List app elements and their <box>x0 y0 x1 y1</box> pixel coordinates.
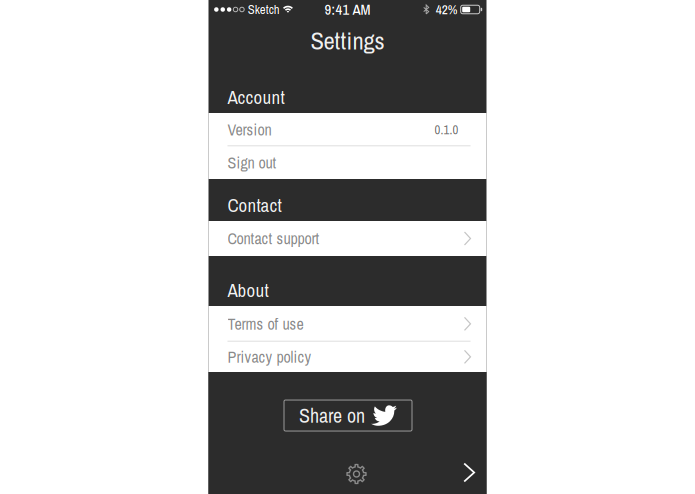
staticText: Account <box>227 84 284 110</box>
staticText: 9:41 AM <box>324 0 370 19</box>
staticText: 0.1.0 <box>434 121 458 138</box>
staticText: About <box>227 277 268 303</box>
staticText: Sketch <box>248 1 280 18</box>
button[interactable]: Version <box>208 113 486 146</box>
button[interactable]: Contact support <box>208 221 486 256</box>
button[interactable]: Terms of use <box>208 306 486 342</box>
staticText: Sign out <box>227 152 276 173</box>
button[interactable]: Settings <box>338 455 375 492</box>
staticText: Settings <box>310 24 384 57</box>
button[interactable]: Privacy policy <box>208 342 486 372</box>
staticText: 42% <box>436 0 458 18</box>
button[interactable]: Share on <box>284 400 412 431</box>
staticText: Version <box>227 119 271 140</box>
button[interactable]: Next <box>455 454 483 490</box>
button[interactable]: Sign out <box>208 146 486 179</box>
staticText: Share on <box>299 402 365 429</box>
staticText: Contact support <box>227 228 319 249</box>
staticText: Terms of use <box>227 313 303 335</box>
staticText: Contact <box>227 192 281 218</box>
staticText: Privacy policy <box>227 346 311 368</box>
